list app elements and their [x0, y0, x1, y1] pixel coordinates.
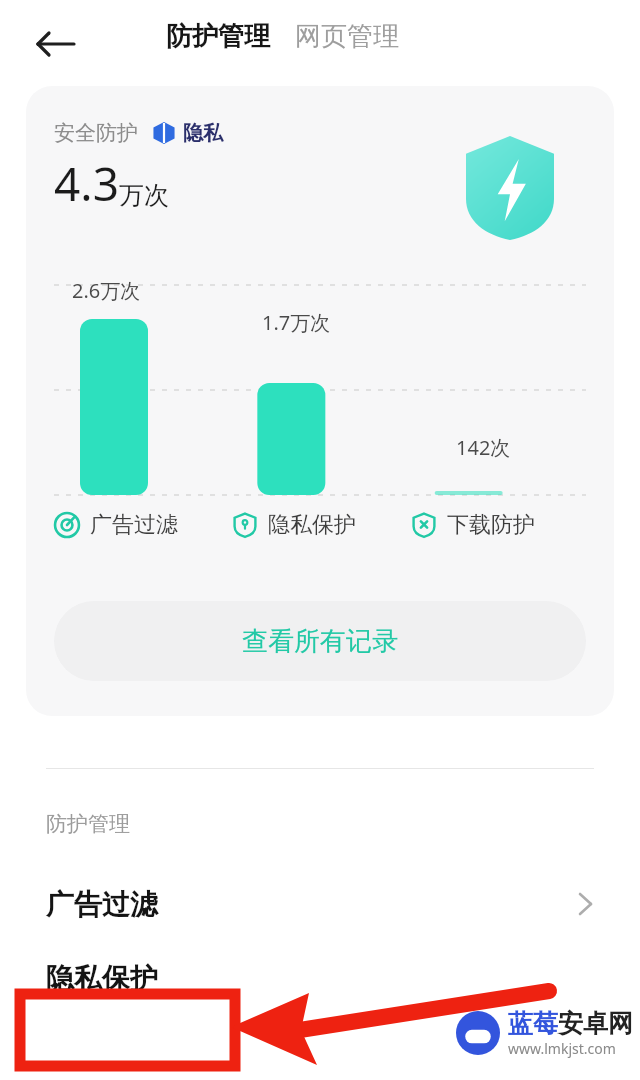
- staticText: 4.3: [54, 152, 119, 215]
- staticText: 隐私: [183, 121, 223, 146]
- staticText: 下载防护: [447, 511, 535, 539]
- button[interactable]: 下载防护: [411, 511, 590, 539]
- button[interactable]: 查看所有记录: [54, 601, 586, 681]
- staticText: 网页管理: [295, 20, 399, 53]
- button[interactable]: 防护管理: [166, 20, 270, 53]
- button[interactable]: Back: [30, 18, 82, 70]
- staticText: 隐私保护: [46, 961, 158, 996]
- staticText: 142次: [456, 434, 511, 461]
- staticText: 广告过滤: [46, 887, 158, 922]
- staticText: 安卓网: [558, 1008, 633, 1039]
- button[interactable]: 网页管理: [295, 20, 399, 53]
- staticText: 防护管理: [46, 811, 130, 837]
- staticText: 防护管理: [166, 20, 270, 53]
- staticText: 安全防护: [54, 120, 138, 146]
- button[interactable]: 广告过滤: [0, 867, 640, 941]
- staticText: 广告过滤: [90, 511, 178, 539]
- staticText: 2.6万次: [72, 277, 141, 304]
- staticText: 查看所有记录: [242, 625, 398, 658]
- staticText: 1.7万次: [262, 309, 331, 336]
- button[interactable]: 隐私保护: [232, 511, 411, 539]
- button[interactable]: 隐私保护: [0, 941, 640, 1015]
- staticText: 万次: [119, 180, 169, 211]
- staticText: 隐私保护: [268, 511, 356, 539]
- button[interactable]: 广告过滤: [54, 511, 232, 539]
- staticText: 蓝莓: [508, 1008, 558, 1039]
- staticText: www.lmkjst.com: [508, 1039, 616, 1058]
